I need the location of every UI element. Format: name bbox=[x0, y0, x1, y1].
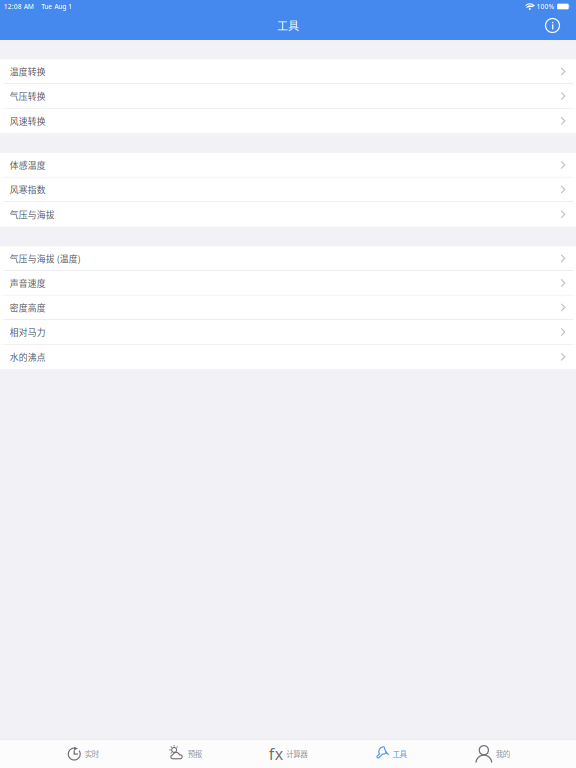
staticText: 相对马力 bbox=[10, 326, 46, 338]
staticText: 声音速度 bbox=[10, 277, 46, 289]
button[interactable]: Info bbox=[539, 12, 565, 38]
button[interactable]: 水的沸点 bbox=[0, 345, 576, 369]
staticText: 气压与海拔 (温度) bbox=[10, 252, 81, 265]
staticText: 工具 bbox=[277, 17, 299, 33]
button[interactable]: 相对马力 bbox=[0, 320, 576, 345]
staticText: 计算器 bbox=[286, 748, 307, 759]
staticText: 100% bbox=[537, 2, 555, 11]
staticText: 预报 bbox=[188, 748, 202, 759]
button[interactable]: 实时 bbox=[32, 739, 134, 768]
button[interactable]: 气压转换 bbox=[0, 84, 576, 109]
button[interactable]: 气压与海拔 bbox=[0, 202, 576, 227]
staticText: 工具 bbox=[392, 748, 406, 759]
button[interactable]: 风寒指数 bbox=[0, 177, 576, 202]
staticText: 密度高度 bbox=[10, 301, 46, 314]
staticText: 体感温度 bbox=[10, 159, 46, 171]
staticText: 气压与海拔 bbox=[10, 208, 55, 221]
staticText: 实时 bbox=[85, 748, 99, 759]
staticText: 风速转换 bbox=[10, 114, 46, 127]
button[interactable]: fx bbox=[237, 739, 339, 768]
staticText: 12:08 AM bbox=[4, 2, 34, 11]
staticText: 气压转换 bbox=[10, 90, 46, 102]
button[interactable]: 预报 bbox=[134, 739, 237, 768]
staticText: 我的 bbox=[496, 748, 510, 759]
staticText: 温度转换 bbox=[10, 65, 46, 78]
button[interactable]: 体感温度 bbox=[0, 153, 576, 177]
button[interactable]: 风速转换 bbox=[0, 109, 576, 133]
button[interactable]: 温度转换 bbox=[0, 59, 576, 84]
staticText: 风寒指数 bbox=[10, 183, 46, 196]
staticText: Tue Aug 1 bbox=[41, 2, 72, 11]
button[interactable]: 密度高度 bbox=[0, 295, 576, 320]
button[interactable]: 我的 bbox=[442, 739, 544, 768]
staticText: fx bbox=[269, 743, 283, 764]
button[interactable]: 工具 bbox=[339, 739, 442, 768]
button[interactable]: 声音速度 bbox=[0, 271, 576, 296]
staticText: 水的沸点 bbox=[10, 350, 46, 363]
button[interactable]: 气压与海拔 (温度) bbox=[0, 246, 576, 271]
